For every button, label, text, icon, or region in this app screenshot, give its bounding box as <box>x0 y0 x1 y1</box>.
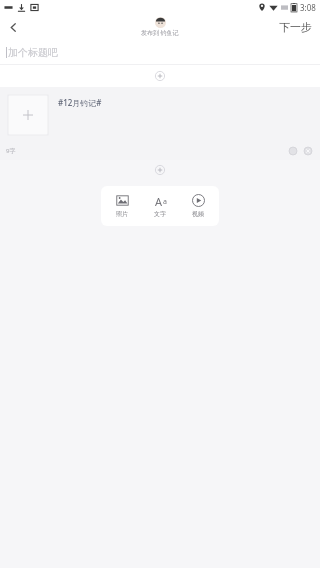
button[interactable]: A <box>143 186 177 226</box>
button[interactable]: 加个标题吧 <box>0 40 320 64</box>
staticText: 下一步 <box>279 20 312 34</box>
button[interactable]: Back <box>0 14 26 40</box>
staticText: a <box>163 197 167 207</box>
staticText: 发布到 钓鱼记 <box>141 29 179 37</box>
button[interactable]: 发布到 钓鱼记 <box>141 17 179 37</box>
button[interactable]: 视频 <box>181 186 215 226</box>
button[interactable]: 下一步 <box>279 20 312 34</box>
staticText: 照片 <box>116 210 128 218</box>
button[interactable]: Add block <box>153 163 167 177</box>
button[interactable]: Add image <box>8 95 48 135</box>
button[interactable]: Add block <box>153 69 167 83</box>
button[interactable]: Delete block <box>302 145 314 157</box>
staticText: #12月钓记# <box>58 97 102 108</box>
button[interactable]: Move block <box>287 145 299 157</box>
staticText: A <box>155 194 163 207</box>
staticText: 视频 <box>192 210 204 218</box>
staticText: 加个标题吧 <box>8 46 58 59</box>
staticText: 9字 <box>6 147 16 155</box>
staticText: 3:08 <box>300 2 316 13</box>
button[interactable]: 照片 <box>105 186 139 226</box>
staticText: 文字 <box>154 210 166 218</box>
